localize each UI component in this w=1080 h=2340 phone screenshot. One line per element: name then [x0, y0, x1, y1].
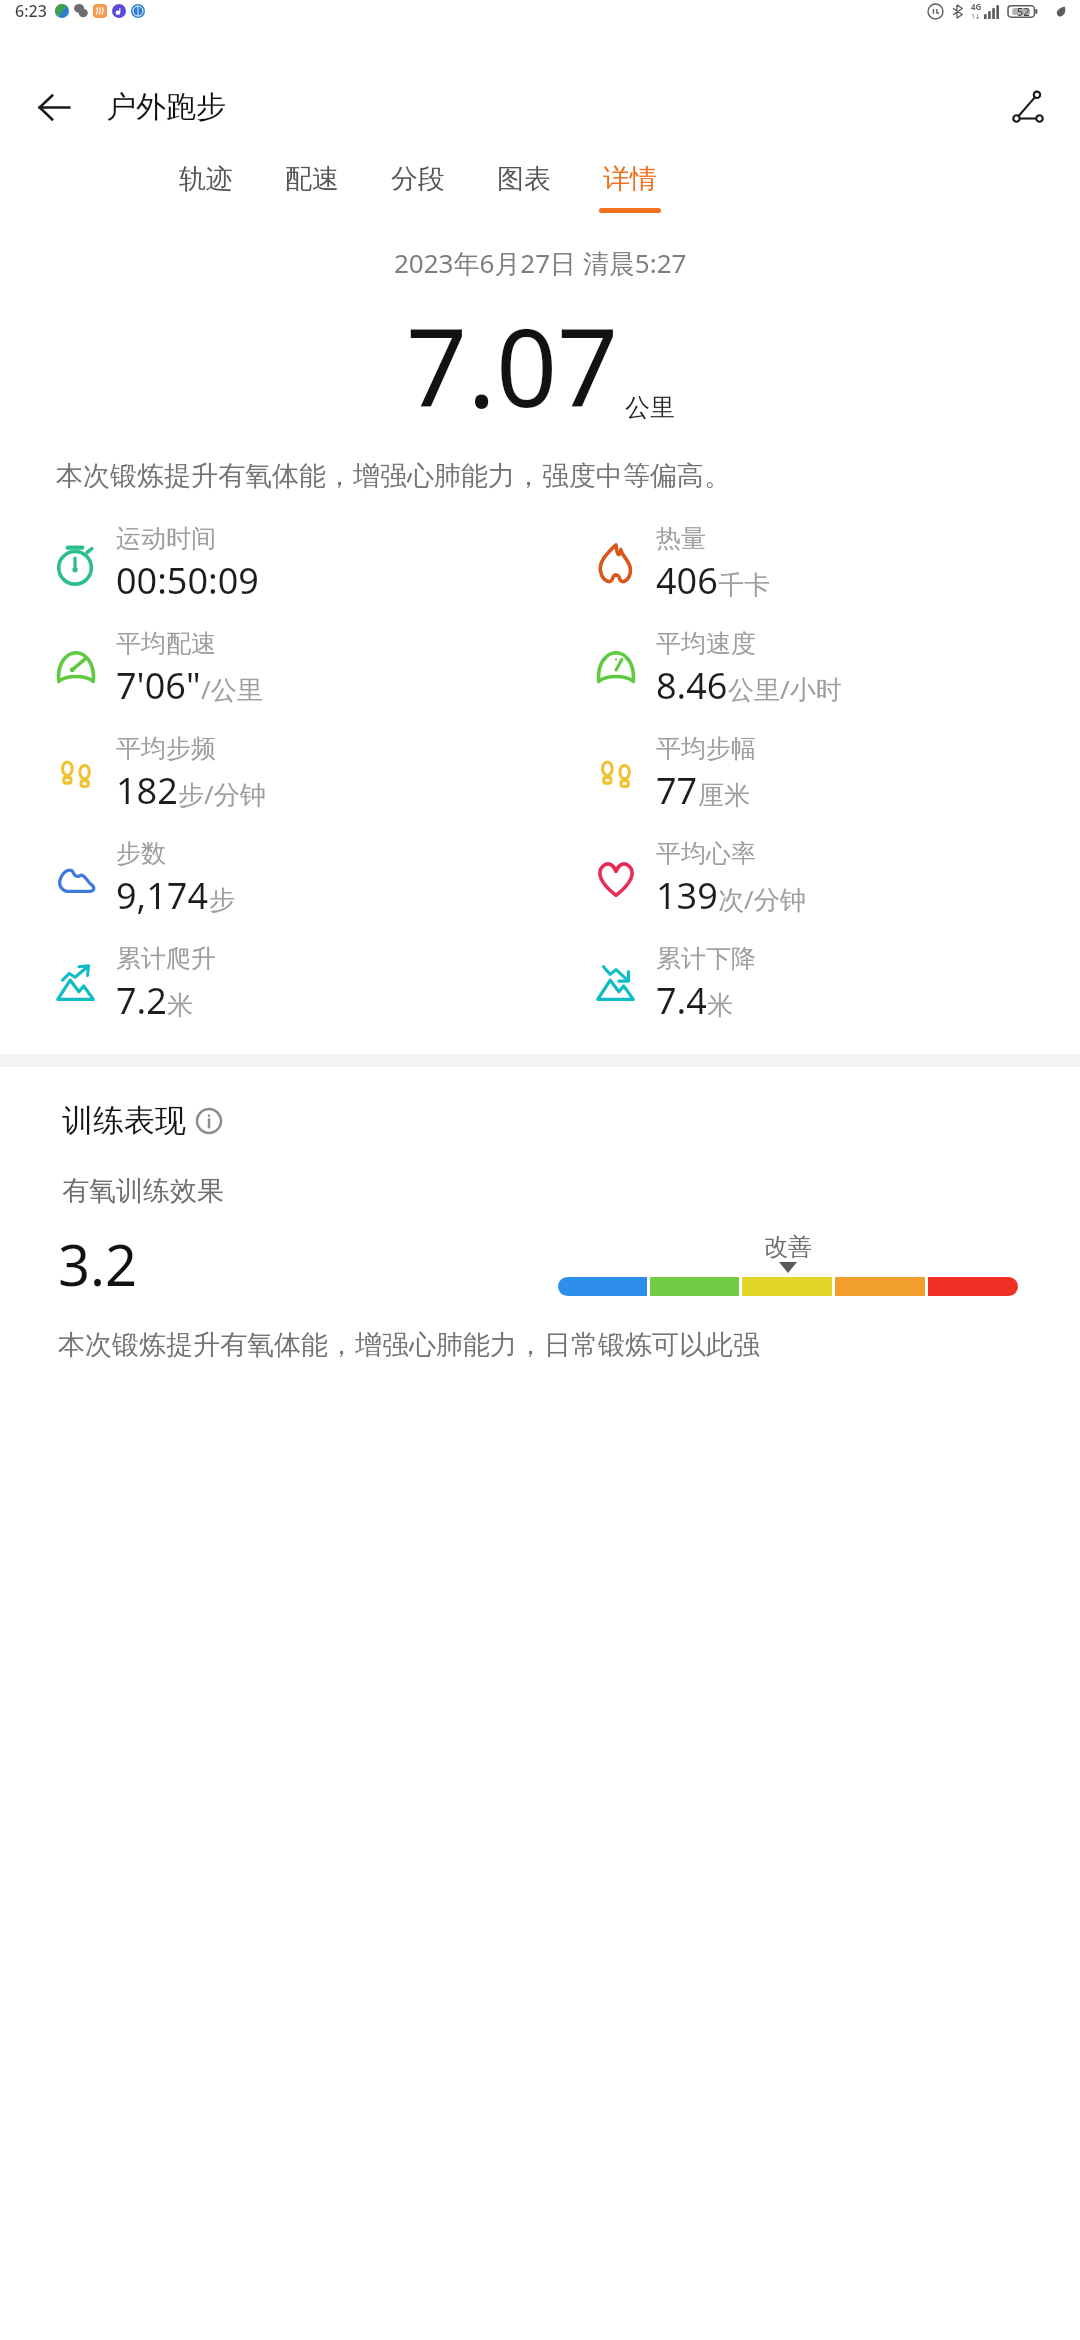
button[interactable]: 累计爬升	[0, 931, 540, 1036]
staticText: 次/分钟	[718, 881, 806, 917]
staticText: 3.2	[58, 1226, 138, 1302]
staticText: 平均心率	[656, 838, 756, 869]
button[interactable]: 运动时间	[0, 511, 540, 616]
staticText: 步	[209, 884, 235, 917]
button[interactable]: 分段	[387, 156, 449, 219]
staticText: 52	[1017, 4, 1030, 19]
button[interactable]: 轨迹	[175, 156, 237, 219]
staticText: 热量	[656, 523, 706, 554]
staticText: 累计爬升	[116, 943, 216, 974]
button[interactable]: 配速	[281, 156, 343, 219]
staticText: 6:23	[15, 0, 47, 22]
staticText: /公里	[201, 671, 263, 707]
staticText: 户外跑步	[106, 88, 226, 126]
staticText: 轨迹	[179, 162, 233, 196]
staticText: 7.2	[116, 976, 167, 1025]
button[interactable]: 步数	[0, 826, 540, 931]
staticText: 406	[656, 556, 718, 605]
staticText: 累计下降	[656, 943, 756, 974]
staticText: 千卡	[718, 569, 770, 602]
staticText: 配速	[285, 162, 339, 196]
button[interactable]: 详情	[599, 156, 661, 219]
button[interactable]: 累计下降	[540, 931, 1080, 1036]
staticText: 米	[707, 989, 733, 1022]
staticText: 7.07	[406, 293, 619, 439]
button[interactable]: 平均配速	[0, 616, 540, 721]
staticText: 有氧训练效果	[62, 1174, 224, 1208]
other: Info	[196, 1108, 222, 1134]
staticText: 1↓	[971, 12, 981, 22]
staticText: 公里/小时	[728, 671, 842, 707]
staticText: 本次锻炼提升有氧体能，增强心肺能力，强度中等偏高。	[56, 459, 1024, 493]
staticText: 厘米	[698, 779, 750, 812]
staticText: 9,174	[116, 871, 209, 920]
staticText: 平均步频	[116, 733, 216, 764]
staticText: 2023年6月27日 清晨5:27	[394, 245, 687, 281]
staticText: 00:50:09	[116, 556, 259, 605]
staticText: 步数	[116, 838, 166, 869]
staticText: 训练表现	[62, 1101, 186, 1140]
staticText: 运动时间	[116, 523, 216, 554]
staticText: 米	[167, 989, 193, 1022]
staticText: 步/分钟	[178, 776, 266, 812]
button[interactable]: 热量	[540, 511, 1080, 616]
button[interactable]: Back	[24, 77, 84, 137]
staticText: 4G	[971, 1, 982, 12]
staticText: 图表	[497, 162, 551, 196]
button[interactable]: 平均步幅	[540, 721, 1080, 826]
button[interactable]: 平均速度	[540, 616, 1080, 721]
button[interactable]: 图表	[493, 156, 555, 219]
staticText: 分段	[391, 162, 445, 196]
staticText: 平均配速	[116, 628, 216, 659]
staticText: 改善	[764, 1232, 812, 1262]
button[interactable]: 训练表现	[62, 1101, 222, 1140]
button[interactable]: 平均步频	[0, 721, 540, 826]
staticText: 平均步幅	[656, 733, 756, 764]
staticText: 详情	[603, 162, 657, 196]
staticText: 7.4	[656, 976, 707, 1025]
staticText: 77	[656, 766, 698, 815]
button[interactable]: Share	[998, 77, 1058, 137]
staticText: 平均速度	[656, 628, 756, 659]
staticText: 139	[656, 871, 718, 920]
staticText: 8.46	[656, 661, 728, 710]
staticText: 本次锻炼提升有氧体能，增强心肺能力，日常锻炼可以此强	[58, 1328, 760, 1362]
staticText: 公里	[625, 392, 675, 423]
button[interactable]: 平均心率	[540, 826, 1080, 931]
staticText: 7'06"	[116, 661, 201, 710]
staticText: 182	[116, 766, 178, 815]
